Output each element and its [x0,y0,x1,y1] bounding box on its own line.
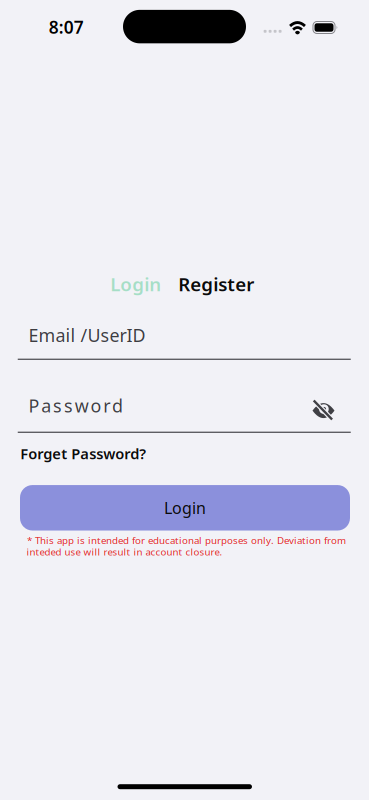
button[interactable]: Login [20,485,350,531]
staticText: * This app is intended for educational p… [27,534,346,547]
staticText: 8:07 [49,15,84,38]
button[interactable]: Register [178,272,254,296]
staticText: inteded use will result in account closu… [26,545,222,558]
staticText: Forget Password? [20,444,146,463]
button[interactable]: Forget Password? [20,444,146,463]
button[interactable]: Show password [311,400,335,420]
staticText: Login [110,272,161,296]
staticText: Email /UserID [28,323,145,347]
button[interactable]: Login [110,272,161,296]
staticText: Password [28,393,123,418]
staticText: Login [164,497,206,518]
staticText: Register [178,272,254,296]
